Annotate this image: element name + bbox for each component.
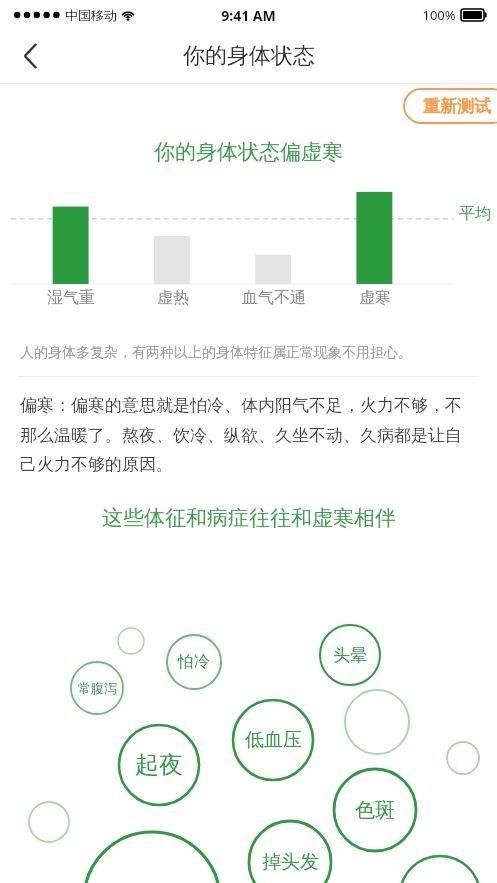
staticText: 100% xyxy=(422,6,456,24)
staticText: 怕冷 xyxy=(178,652,210,672)
staticText: 虚热 xyxy=(157,288,189,308)
staticText: 人的身体多复杂，有两种以上的身体特征属正常现象不用担心。 xyxy=(20,344,412,362)
staticText: 中国移动 xyxy=(65,7,117,23)
staticText: 常腹泻 xyxy=(78,680,117,696)
button[interactable]: 常腹泻 xyxy=(71,662,123,714)
staticText: 平均 xyxy=(459,204,491,224)
button[interactable]: 低血压 xyxy=(233,700,313,780)
staticText: 血气不通 xyxy=(242,288,306,308)
staticText: 掉头发 xyxy=(262,850,319,874)
staticText: 你的身体状态 xyxy=(183,42,315,70)
button[interactable]: 起夜 xyxy=(119,725,199,805)
button[interactable]: Back xyxy=(8,34,52,78)
button[interactable]: 掉头发 xyxy=(249,821,331,883)
button[interactable]: 怕冷 xyxy=(167,635,221,689)
button[interactable]: 睡眠浅 xyxy=(400,856,480,883)
staticText: 这些体征和病症往往和虚寒相伴 xyxy=(102,505,396,531)
button[interactable]: 头晕 xyxy=(320,625,380,685)
staticText: 起夜 xyxy=(135,750,183,780)
staticText: 重新测试 xyxy=(423,96,491,117)
staticText: 湿气重 xyxy=(47,288,95,308)
button[interactable]: 色斑 xyxy=(334,769,416,851)
staticText: 色斑 xyxy=(355,798,395,823)
staticText: 低血压 xyxy=(245,728,302,752)
staticText: 你的身体状态偏虚寒 xyxy=(154,139,343,165)
staticText: 偏寒：偏寒的意思就是怕冷、体内阳气不足，火力不够，不那么温暖了。熬夜、饮冷、纵欲… xyxy=(20,395,477,475)
staticText: 虚寒 xyxy=(359,288,391,308)
staticText: 9:41 AM xyxy=(221,6,276,25)
staticText: 头晕 xyxy=(333,645,367,666)
button[interactable]: 重新测试 xyxy=(403,88,497,124)
